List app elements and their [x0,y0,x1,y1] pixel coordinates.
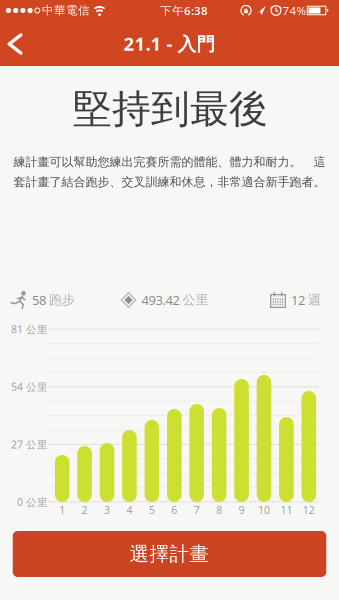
staticText: 10 [258,503,270,517]
staticText: 12 [303,503,315,517]
staticText: 中華電信 [42,3,90,18]
staticText: 21.1 - 入門 [123,31,215,56]
staticText: 8 [216,503,222,517]
staticText: 公里 [182,292,208,308]
staticText: 27 公里 [11,437,48,451]
staticText: 跑步 [49,292,75,308]
staticText: 堅持到最後 [73,85,268,133]
staticText: 練計畫可以幫助您練出完賽所需的體能、體力和耐力。 這 [13,154,325,169]
staticText: 選擇計畫 [129,542,209,566]
staticText: 9 [239,503,245,517]
staticText: 54 公里 [11,380,48,394]
staticText: 12 [291,291,305,309]
staticText: 493.42 [141,291,179,309]
button[interactable]: Back [7,33,23,55]
staticText: 套計畫了結合跑步、交叉訓練和休息，非常適合新手跑者。 [13,174,325,189]
staticText: 下午6:38 [160,3,208,18]
staticText: 4 [126,503,132,517]
staticText: 6 [171,503,177,517]
staticText: 1 [59,503,65,517]
staticText: 74% [282,3,306,18]
staticText: 7 [194,503,200,517]
staticText: 週 [308,292,321,308]
staticText: 3 [104,503,110,517]
button[interactable]: 選擇計畫 [13,531,326,577]
staticText: 58 [32,291,46,309]
staticText: 0 公里 [17,495,48,509]
staticText: 5 [149,503,155,517]
staticText: 2 [82,503,88,517]
staticText: 81 公里 [11,322,48,336]
staticText: 11 [280,503,292,517]
